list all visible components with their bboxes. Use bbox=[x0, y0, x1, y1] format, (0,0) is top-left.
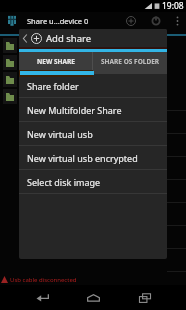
staticText: Share folder bbox=[27, 80, 79, 92]
staticText: SHARE OS FOLDER bbox=[101, 57, 160, 66]
button[interactable]: Power bbox=[143, 12, 169, 29]
button[interactable]: Select disk image bbox=[19, 170, 167, 193]
staticText: Share u...device 0 bbox=[27, 16, 89, 26]
staticText: New virtual usb encrypted bbox=[27, 152, 138, 164]
staticText: Add share bbox=[46, 32, 92, 45]
button[interactable]: Back bbox=[21, 29, 29, 47]
button[interactable]: New Multifolder Share bbox=[19, 98, 167, 121]
staticText: New virtual usb bbox=[27, 128, 93, 140]
staticText: 19:08 bbox=[162, 0, 184, 12]
staticText: NEW SHARE bbox=[37, 57, 75, 66]
button[interactable]: SHARE OS FOLDER bbox=[93, 52, 167, 74]
button[interactable]: Recents bbox=[119, 285, 170, 310]
button[interactable]: Home bbox=[68, 285, 119, 310]
staticText: Usb cable disconnected bbox=[10, 276, 77, 284]
staticText: Select disk image bbox=[27, 176, 101, 188]
button[interactable]: NEW SHARE bbox=[19, 52, 92, 74]
button[interactable]: New virtual usb bbox=[19, 122, 167, 145]
button[interactable]: New virtual usb encrypted bbox=[19, 146, 167, 169]
button[interactable]: Add bbox=[119, 12, 143, 29]
staticText: New Multifolder Share bbox=[27, 104, 122, 116]
button[interactable]: Back bbox=[17, 285, 68, 310]
button[interactable]: More options bbox=[169, 12, 185, 29]
button[interactable]: Share folder bbox=[19, 74, 167, 97]
